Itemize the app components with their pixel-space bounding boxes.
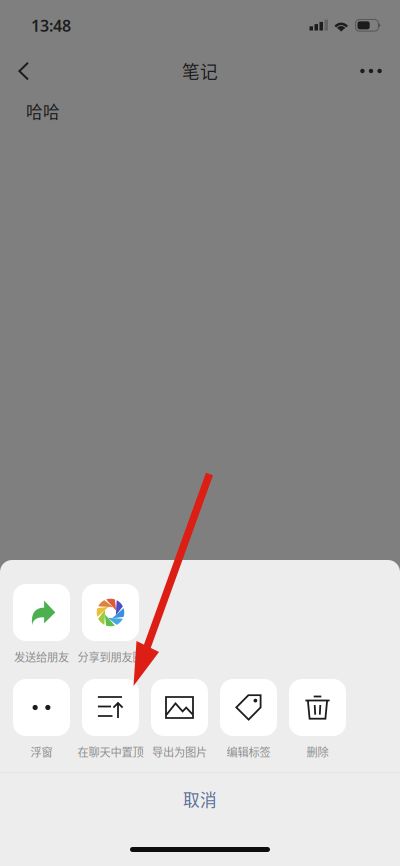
button[interactable]: 分享到朋友圈 xyxy=(76,584,145,663)
button[interactable]: 返回 xyxy=(2,49,46,93)
staticText: 在聊天中置顶 xyxy=(77,743,143,760)
staticText: 浮窗 xyxy=(30,743,52,760)
button[interactable]: 编辑标签 xyxy=(214,679,283,758)
button[interactable]: 发送给朋友 xyxy=(7,584,76,663)
staticText: 导出为图片 xyxy=(152,743,207,760)
button[interactable]: 取消 xyxy=(0,773,400,825)
staticText: 笔记 xyxy=(182,58,218,84)
staticText: 分享到朋友圈 xyxy=(77,648,143,665)
staticText: 发送给朋友 xyxy=(14,648,69,665)
button[interactable]: 在聊天中置顶 xyxy=(76,679,145,758)
button[interactable]: 导出为图片 xyxy=(145,679,214,758)
staticText: 删除 xyxy=(306,743,328,760)
staticText: 编辑标签 xyxy=(226,743,270,760)
staticText: 13:48 xyxy=(31,15,71,36)
staticText: 哈哈 xyxy=(26,99,60,123)
button[interactable]: 浮窗 xyxy=(7,679,76,758)
staticText: 取消 xyxy=(183,787,217,811)
button[interactable]: 删除 xyxy=(283,679,352,758)
button[interactable]: 更多 xyxy=(349,49,393,93)
